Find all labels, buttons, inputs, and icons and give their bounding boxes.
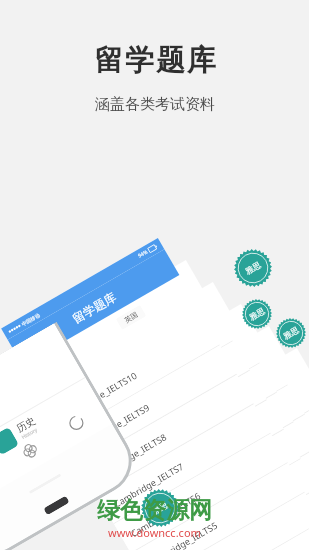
staticText: Cambridge_IELTS6 <box>156 433 231 483</box>
staticText: 绿色资源网 <box>97 496 212 525</box>
button[interactable]: 历史 <box>0 381 96 455</box>
staticText: Cambridge_IELTS3 <box>196 529 271 550</box>
button[interactable]: Cambridge_IELTS5 <box>131 463 304 550</box>
button[interactable]: Cambridge_IELTS8 <box>76 341 249 460</box>
button[interactable]: Cambridge_IELTS4 <box>197 422 309 541</box>
staticText: Cambridge_IELTS4 <box>179 500 254 550</box>
button[interactable]: Cambridge_IELTS7 <box>93 371 266 490</box>
staticText: 雅思 <box>244 260 262 276</box>
staticText: Cambridge_IELTS8 <box>90 397 165 447</box>
staticText: Cambridge_IELTS10 <box>60 369 139 421</box>
staticText: 留学题库 <box>93 42 217 79</box>
staticText: Cambridge_IELTS7 <box>111 460 186 510</box>
staticText: 中国移动 <box>20 312 41 327</box>
button[interactable]: Cambridge_IELTS2 <box>188 510 309 550</box>
button[interactable]: Cambridge_IELTS3 <box>204 459 309 550</box>
button[interactable]: Cambridge_IELTS7 <box>97 404 270 523</box>
button[interactable]: Cambridge_IELTS2 <box>199 503 309 550</box>
button[interactable]: Cambridge_IELTS9 <box>63 345 236 464</box>
button[interactable]: Cambridge_IELTS3 <box>182 474 309 550</box>
staticText: Cambridge_IELTS6 <box>134 448 209 498</box>
staticText: Cambridge_IELTS4 <box>162 548 237 550</box>
staticText: Cambridge_IELTS3 <box>207 522 282 550</box>
button[interactable]: Cambridge_IELTS4 <box>187 429 309 548</box>
button[interactable]: Cambridge_IELTS6 <box>120 393 293 512</box>
staticText: Cambridge_IELTS8 <box>100 389 175 439</box>
staticText: Cambridge_IELTS7 <box>117 419 192 469</box>
staticText: Cambridge_IELTS5 <box>184 455 259 505</box>
staticText: Cambridge_IELTS5 <box>173 463 248 513</box>
button[interactable]: Cambridge_IELTS5 <box>159 407 309 526</box>
staticText: Cambridge_IELTS4 <box>190 492 265 542</box>
button[interactable]: Cambridge_IELTS3 <box>165 522 309 550</box>
staticText: Cambridge_IELTS6 <box>124 456 199 506</box>
button[interactable]: Cambridge_IELTS3 <box>171 481 309 550</box>
staticText: 雅思 <box>151 500 169 516</box>
button[interactable]: Cambridge_IELTS5 <box>170 400 309 519</box>
staticText: Cambridge_IELTS7 <box>107 426 182 476</box>
staticText: Cambridge_IELTS5 <box>141 485 216 535</box>
button[interactable]: Cambridge_IELTS8 <box>80 375 253 494</box>
button[interactable]: Cambridge_IELTS7 <box>114 356 287 475</box>
staticText: Cambridge_IELTS6 <box>145 441 220 491</box>
staticText: Cambridge_IELTS4 <box>168 507 243 550</box>
button[interactable]: Cambridge_IELTS4 <box>176 437 309 550</box>
staticText: Cambridge_IELTS3 <box>185 537 260 550</box>
button[interactable]: Refresh <box>65 412 87 434</box>
button[interactable]: Cambridge_IELTS3 <box>161 488 309 550</box>
staticText: Cambridge_IELTS8 <box>94 430 169 480</box>
button[interactable]: Cambridge_IELTS6 <box>114 434 287 550</box>
button[interactable]: Cambridge_IELTS5 <box>148 415 309 534</box>
button[interactable]: Cambridge_IELTS6 <box>131 385 304 504</box>
staticText: Cambridge_IELTS7 <box>128 411 203 461</box>
button[interactable]: Cambridge_IELTS9 <box>59 312 232 431</box>
staticText: Cambridge_IELTS4 <box>211 477 286 527</box>
staticText: Cambridge_IELTS4 <box>201 485 276 535</box>
staticText: Cambridge_IELTS6 <box>128 489 203 539</box>
staticText: www.downcc.com <box>108 525 201 540</box>
staticText: History <box>20 426 39 441</box>
button[interactable]: Cambridge_IELTS2 <box>178 518 309 550</box>
button[interactable]: Cambridge_IELTS4 <box>148 492 309 550</box>
staticText: Cambridge_IELTS3 <box>175 544 250 550</box>
staticText: Cambridge_IELTS9 <box>73 367 148 417</box>
staticText: Cambridge_IELTS9 <box>77 401 152 451</box>
staticText: Cambridge_IELTS4 <box>158 515 233 550</box>
staticText: 涵盖各类考试资料 <box>95 95 215 114</box>
button[interactable]: Cambridge_IELTS8 <box>86 334 259 453</box>
button[interactable]: 英国 <box>123 310 139 325</box>
button[interactable]: Cambridge_IELTS6 <box>142 378 309 497</box>
button[interactable]: Cambridge_IELTS4 <box>154 452 309 550</box>
staticText: 94% <box>137 248 149 260</box>
button[interactable]: Cambridge_IELTS7 <box>103 363 276 482</box>
staticText: 雅思 <box>282 325 300 341</box>
button[interactable]: Cambridge_IELTS6 <box>110 400 283 519</box>
button[interactable]: Cambridge_IELTS4 <box>165 444 309 550</box>
staticText: 历史 <box>14 414 38 435</box>
button[interactable]: Cambridge_IELTS4 <box>144 459 309 550</box>
button[interactable]: Cambridge_IELTS3 <box>193 466 309 550</box>
button[interactable]: Cambridge_IELTS10 <box>46 316 219 435</box>
button[interactable]: Cambridge_IELTS5 <box>137 422 309 541</box>
button[interactable]: Cambridge_IELTS2 <box>210 496 309 550</box>
button[interactable]: Cambridge_IELTS3 <box>214 451 309 550</box>
staticText: Cambridge_IELTS5 <box>162 470 237 520</box>
button[interactable]: Cambridge_IELTS5 <box>127 430 300 549</box>
staticText: Cambridge_IELTS5 <box>145 519 220 550</box>
